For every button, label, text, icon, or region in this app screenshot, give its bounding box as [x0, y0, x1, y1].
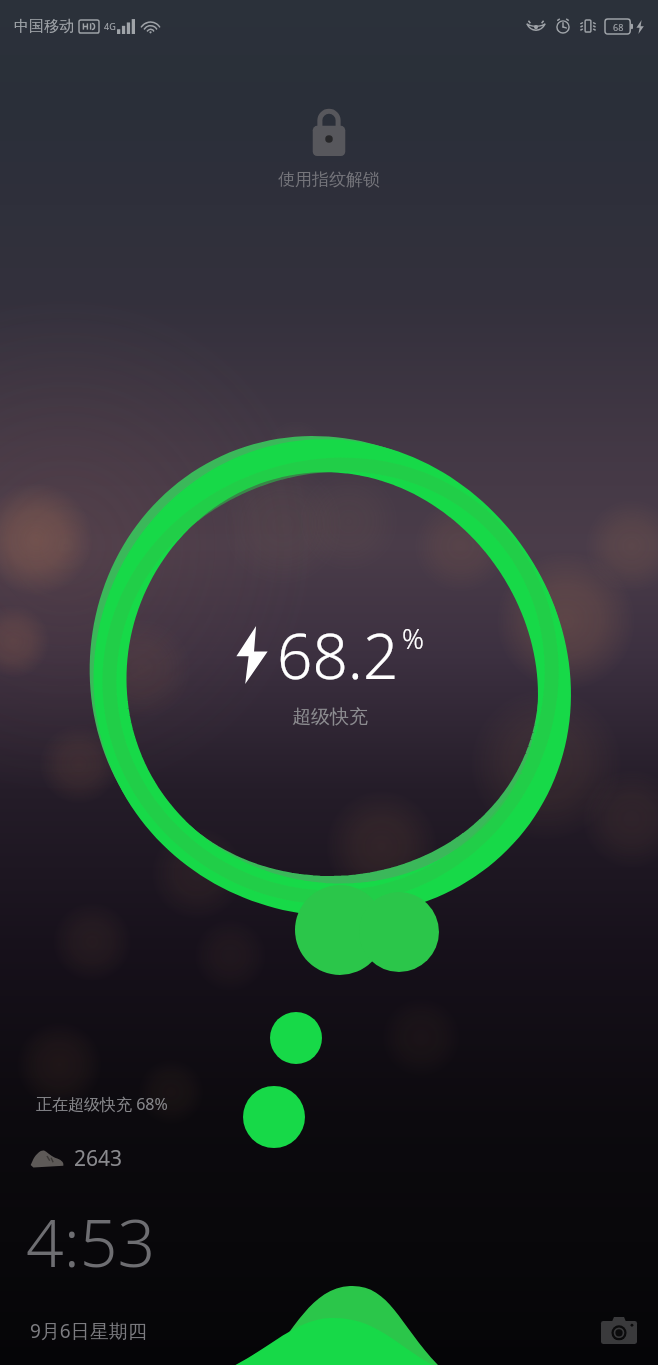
- staticText: 使用指纹解锁: [278, 169, 380, 190]
- staticText: 4:53: [26, 1196, 156, 1286]
- staticText: 超级快充: [292, 705, 368, 729]
- button[interactable]: 使用指纹解锁: [252, 98, 406, 196]
- staticText: 4G: [104, 20, 116, 32]
- staticText: 68: [613, 21, 624, 33]
- staticText: 68.2: [277, 613, 399, 697]
- staticText: 9月6日星期四: [30, 1318, 147, 1344]
- staticText: 中国移动: [14, 17, 74, 36]
- button[interactable]: 2643: [26, 1142, 127, 1175]
- staticText: 2643: [74, 1144, 123, 1173]
- staticText: %: [402, 620, 424, 657]
- staticText: 正在超级快充 68%: [36, 1093, 168, 1115]
- button[interactable]: Camera: [594, 1305, 644, 1355]
